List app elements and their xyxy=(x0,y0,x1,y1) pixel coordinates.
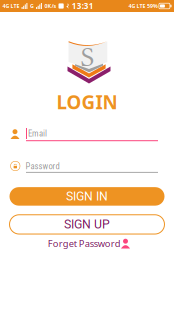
staticText: 59% xyxy=(147,2,158,10)
staticText: LOGIN xyxy=(56,90,117,114)
staticText: LTE xyxy=(10,2,19,10)
button[interactable]: SIGN IN xyxy=(9,187,164,206)
staticText: Email xyxy=(28,128,47,139)
button[interactable]: Forget Password xyxy=(48,237,128,250)
staticText: 4G xyxy=(2,2,9,10)
staticText: LTE xyxy=(136,2,145,10)
staticText: Password xyxy=(25,161,59,171)
staticText: SIGN UP xyxy=(64,217,110,232)
staticText: G xyxy=(30,2,34,10)
button[interactable]: SIGN UP xyxy=(9,215,164,234)
staticText: SIGN IN xyxy=(66,189,108,204)
staticText: S xyxy=(81,41,95,73)
staticText: 13:31 xyxy=(72,1,94,11)
staticText: 0K/s xyxy=(44,2,56,10)
staticText: 4G xyxy=(128,2,135,10)
staticText: Forget Password xyxy=(48,237,121,250)
